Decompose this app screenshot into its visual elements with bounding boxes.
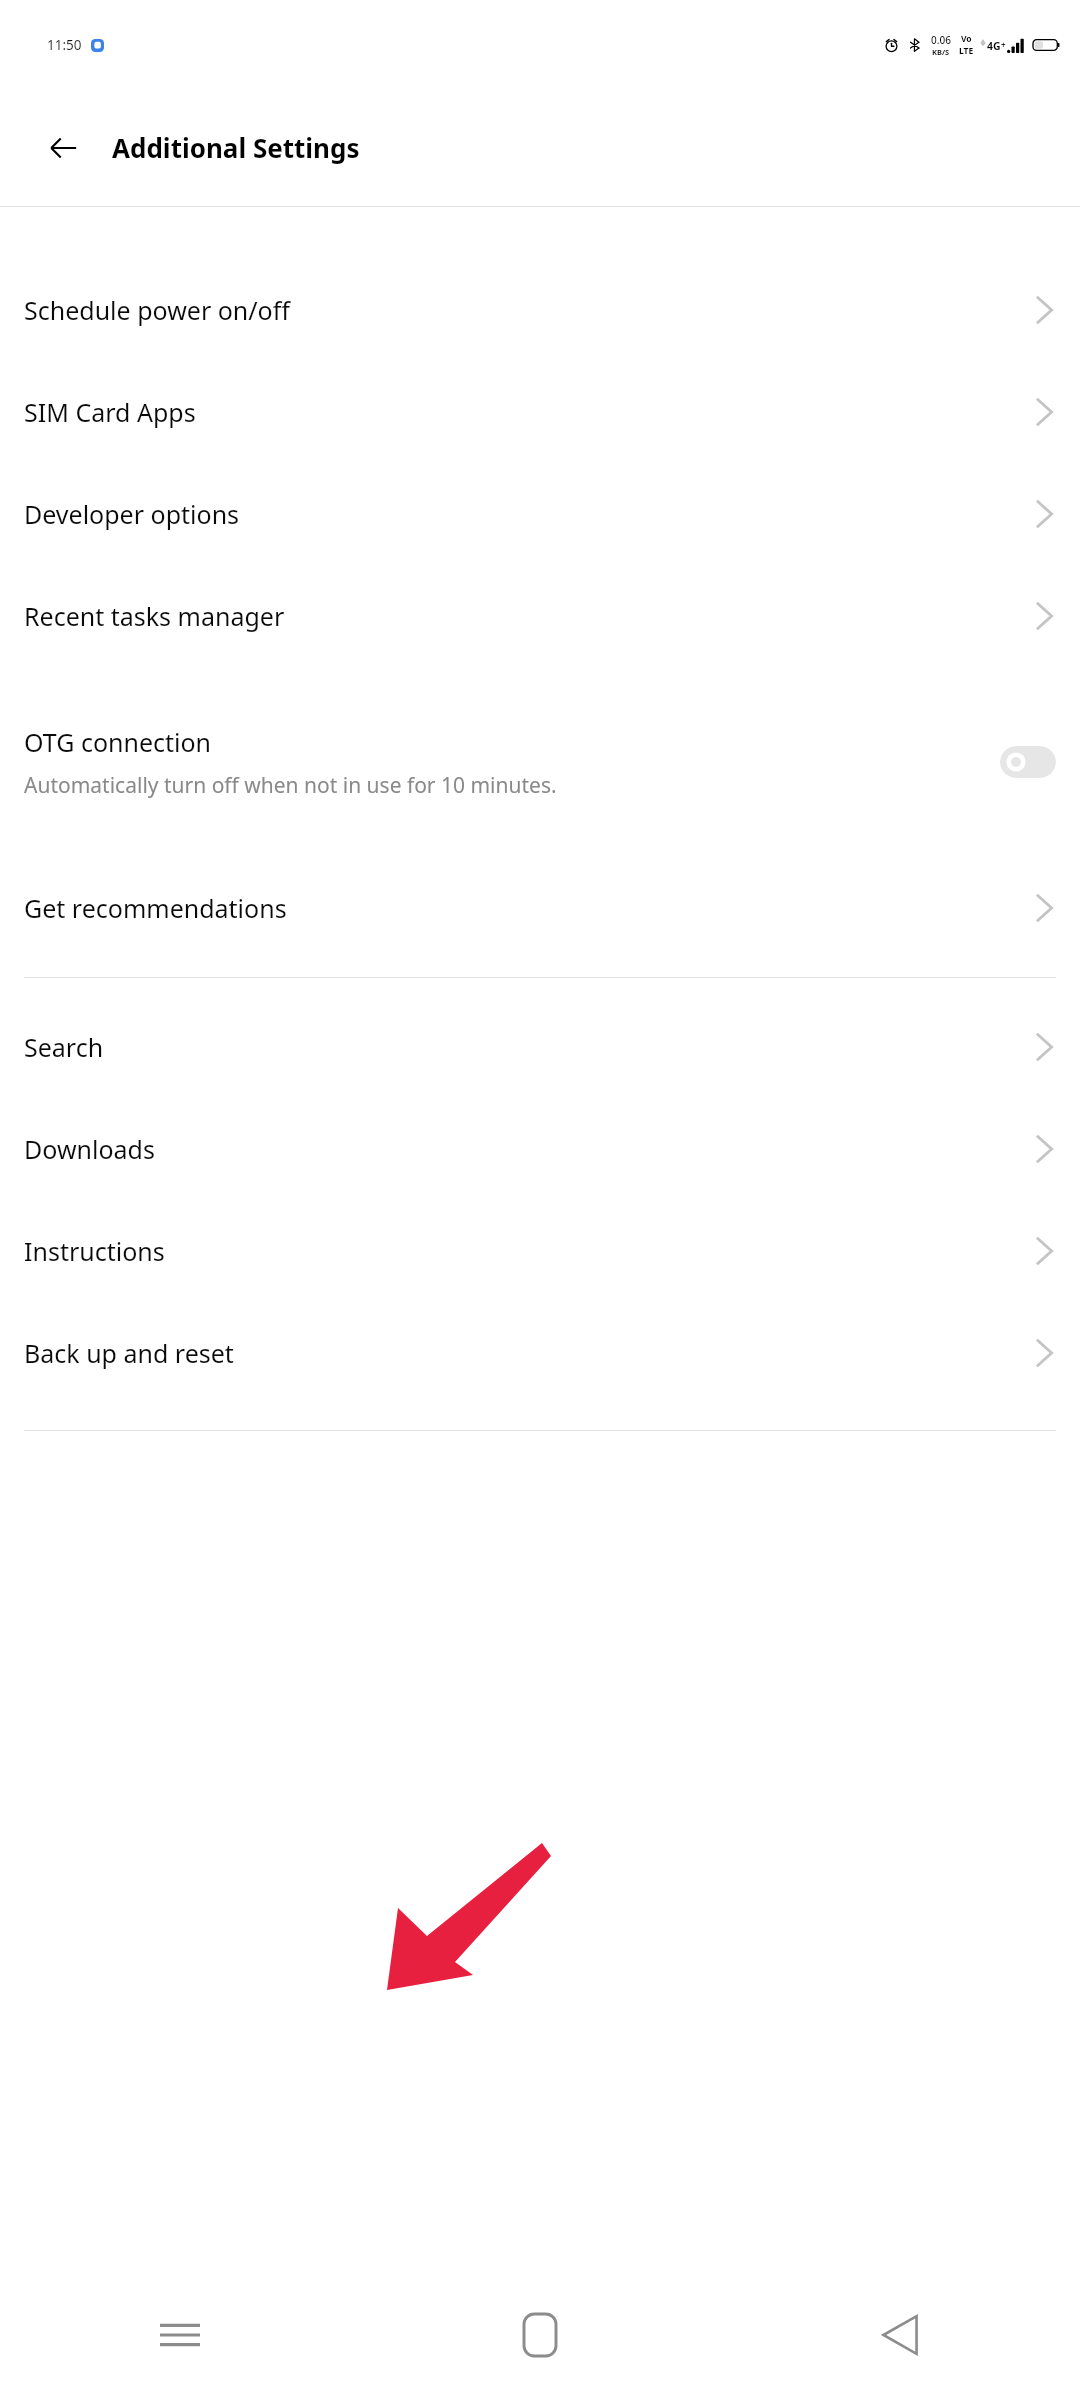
staticText: 11:50 [47,36,82,54]
staticText: 0.06 [931,33,951,47]
staticText: Automatically turn off when not in use f… [24,771,557,800]
button[interactable]: Recent tasks manager [0,565,1080,667]
button[interactable]: Search [0,996,1080,1098]
staticText: Additional Settings [112,130,360,165]
button[interactable]: SIM Card Apps [0,361,1080,463]
button[interactable]: Back [720,2270,1080,2400]
staticText: Get recommendations [24,891,1034,925]
staticText: Back up and reset [24,1336,1034,1370]
staticText: KB/S [932,47,950,57]
button[interactable]: OTG connection toggle [1000,746,1056,778]
staticText: Downloads [24,1132,1034,1166]
button[interactable]: Developer options [0,463,1080,565]
staticText: Developer options [24,497,1034,531]
staticText: SIM Card Apps [24,395,1034,429]
staticText: + [1001,39,1006,50]
staticText: Vo [961,33,972,45]
button[interactable]: Recent apps [0,2270,360,2400]
button[interactable]: Downloads [0,1098,1080,1200]
button[interactable]: Home [360,2270,720,2400]
button[interactable]: Back [38,123,88,173]
staticText: Instructions [24,1234,1034,1268]
staticText: OTG connection [24,725,212,759]
staticText: Schedule power on/off [24,293,1034,327]
button[interactable]: Back up and reset [0,1302,1080,1404]
staticText: 4G [987,39,1001,53]
button[interactable]: OTG connection [0,667,1080,857]
staticText: Search [24,1030,1034,1064]
staticText: LTE [959,45,974,57]
button[interactable]: Instructions [0,1200,1080,1302]
button[interactable]: Get recommendations [0,857,1080,959]
staticText: Recent tasks manager [24,599,1034,633]
button[interactable]: Schedule power on/off [0,259,1080,361]
